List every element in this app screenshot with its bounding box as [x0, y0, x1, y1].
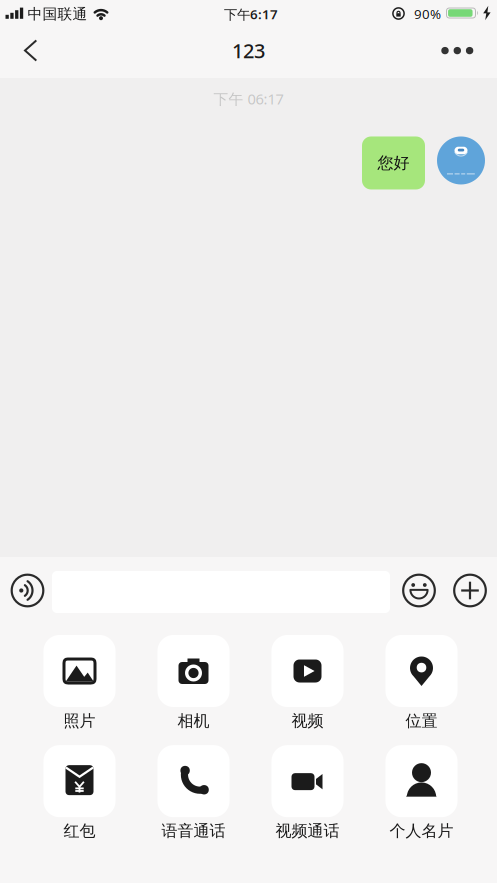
- button[interactable]: 视频通话: [271, 745, 343, 841]
- staticText: 中国联通: [27, 5, 87, 23]
- staticText: 您好: [377, 153, 409, 173]
- staticText: 照片: [63, 711, 95, 731]
- staticText: 相机: [177, 711, 209, 731]
- button[interactable]: 更多: [433, 28, 497, 78]
- staticText: 语音通话: [161, 821, 225, 841]
- button[interactable]: 表情: [399, 570, 439, 610]
- staticText: 位置: [405, 711, 437, 731]
- button[interactable]: 相机: [157, 635, 229, 731]
- staticText: 视频通话: [275, 821, 339, 841]
- button[interactable]: 位置: [385, 635, 457, 731]
- staticText: 123: [232, 37, 265, 64]
- staticText: 个人名片: [389, 821, 453, 841]
- staticText: 90%: [414, 5, 441, 23]
- staticText: 视频: [291, 711, 323, 731]
- staticText: 下午 06:17: [213, 89, 283, 108]
- button[interactable]: 个人名片: [385, 745, 457, 841]
- button[interactable]: 视频: [271, 635, 343, 731]
- button[interactable]: 联系人头像: [437, 136, 485, 184]
- button[interactable]: 语音通话: [157, 745, 229, 841]
- button[interactable]: 语音输入: [7, 570, 47, 610]
- button[interactable]: 返回: [0, 28, 56, 78]
- staticText: 红包: [63, 821, 95, 841]
- button[interactable]: 更多功能: [450, 570, 490, 610]
- button[interactable]: 照片: [43, 635, 115, 731]
- button[interactable]: 红包: [43, 745, 115, 841]
- staticText: 下午6:17: [224, 5, 278, 23]
